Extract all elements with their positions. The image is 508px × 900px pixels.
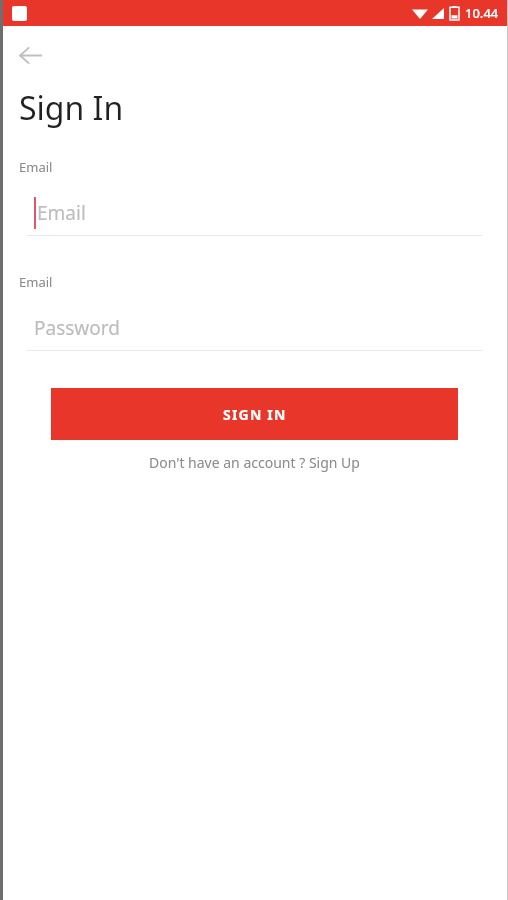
button[interactable]: Back bbox=[8, 33, 52, 77]
staticText: Don't have an account ? Sign Up bbox=[149, 453, 360, 472]
staticText: 10.44 bbox=[465, 4, 499, 22]
button[interactable]: Email bbox=[27, 190, 482, 235]
button[interactable]: SIGN IN bbox=[51, 388, 458, 440]
staticText: Password bbox=[34, 315, 120, 341]
staticText: Sign In bbox=[19, 86, 124, 130]
button[interactable]: Don't have an account ? Sign Up bbox=[137, 449, 372, 476]
button[interactable]: Password bbox=[27, 305, 482, 350]
staticText: SIGN IN bbox=[223, 405, 287, 424]
staticText: Email bbox=[19, 273, 53, 291]
staticText: Email bbox=[19, 158, 53, 176]
staticText: Email bbox=[37, 200, 86, 226]
